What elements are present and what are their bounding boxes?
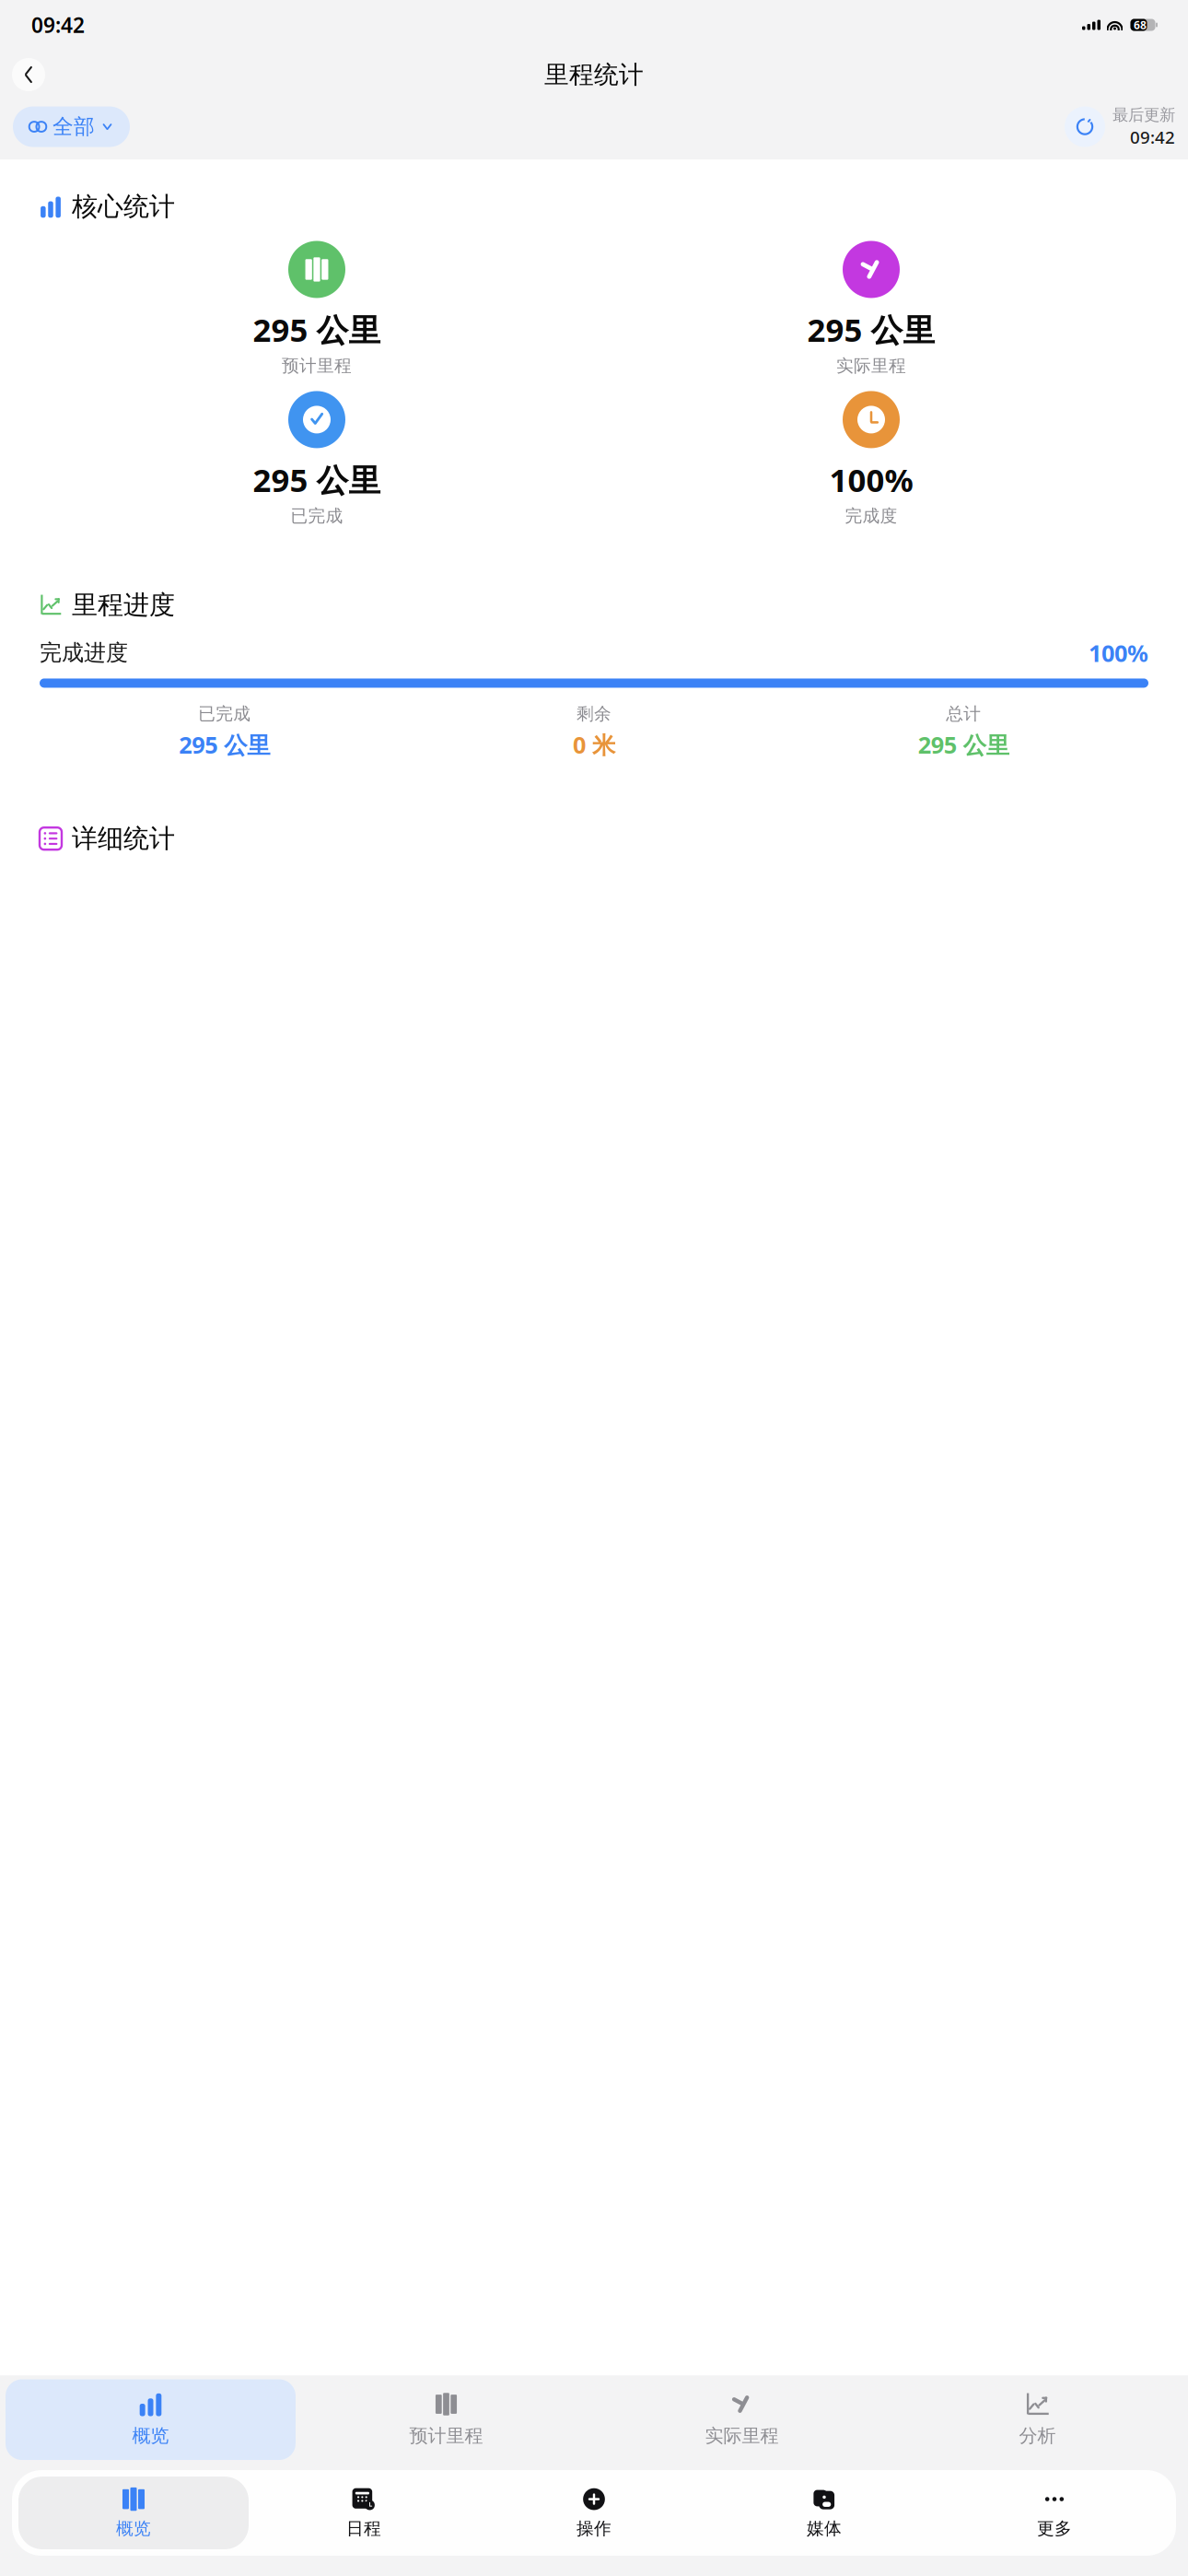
staticText: 分析 bbox=[1019, 2424, 1056, 2447]
staticText: 实际里程 bbox=[836, 355, 906, 376]
button[interactable]: 全部 bbox=[13, 106, 130, 147]
staticText: 概览 bbox=[116, 2518, 151, 2539]
button[interactable]: 操作 bbox=[479, 2477, 709, 2549]
button[interactable]: 预计里程 bbox=[301, 2379, 591, 2460]
staticText: 295 公里 bbox=[253, 308, 381, 351]
staticText: 295 公里 bbox=[918, 729, 1009, 760]
staticText: 总计 bbox=[946, 703, 981, 724]
staticText: 概览 bbox=[132, 2424, 169, 2447]
staticText: 更多 bbox=[1037, 2518, 1072, 2539]
staticText: 完成度 bbox=[845, 505, 897, 526]
button[interactable]: 媒体 bbox=[709, 2477, 939, 2549]
staticText: 已完成 bbox=[291, 505, 343, 526]
button[interactable]: 分析 bbox=[892, 2379, 1182, 2460]
staticText: 里程统计 bbox=[544, 60, 644, 90]
staticText: 预计里程 bbox=[282, 355, 352, 376]
staticText: 已完成 bbox=[198, 703, 251, 724]
staticText: 0 米 bbox=[573, 729, 615, 760]
button[interactable]: 刷新 bbox=[1065, 105, 1175, 148]
staticText: 日程 bbox=[346, 2518, 381, 2539]
button[interactable]: 概览 bbox=[6, 2379, 296, 2460]
staticText: 100% bbox=[829, 458, 913, 501]
staticText: 详细统计 bbox=[72, 823, 175, 854]
staticText: 最后更新 bbox=[1112, 105, 1175, 125]
button[interactable]: 日程 bbox=[249, 2477, 479, 2549]
staticText: 完成进度 bbox=[40, 639, 128, 666]
staticText: 100% bbox=[1089, 637, 1148, 668]
staticText: 295 公里 bbox=[807, 308, 935, 351]
staticText: 预计里程 bbox=[409, 2424, 483, 2447]
staticText: 里程进度 bbox=[72, 589, 175, 621]
staticText: 295 公里 bbox=[179, 729, 270, 760]
staticText: 68 bbox=[1134, 18, 1147, 32]
staticText: 剩余 bbox=[577, 703, 611, 724]
staticText: 媒体 bbox=[807, 2518, 842, 2539]
staticText: 全部 bbox=[52, 114, 95, 139]
button[interactable]: 更多 bbox=[939, 2477, 1170, 2549]
staticText: 操作 bbox=[577, 2518, 611, 2539]
button[interactable]: 概览 bbox=[18, 2477, 249, 2549]
staticText: 核心统计 bbox=[72, 191, 175, 222]
staticText: 295 公里 bbox=[253, 458, 381, 501]
button[interactable]: 实际里程 bbox=[597, 2379, 887, 2460]
staticText: 09:42 bbox=[31, 11, 85, 39]
staticText: 09:42 bbox=[1130, 126, 1175, 148]
staticText: 实际里程 bbox=[705, 2424, 779, 2447]
button[interactable]: 返回 bbox=[8, 54, 49, 95]
